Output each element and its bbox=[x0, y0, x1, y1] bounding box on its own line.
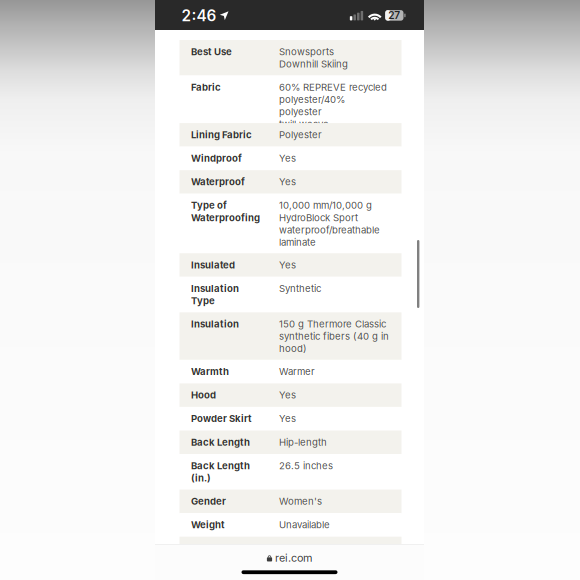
staticText: Insulation Type bbox=[191, 283, 239, 306]
staticText: Warmth bbox=[191, 366, 229, 377]
staticText: Back Length bbox=[191, 436, 250, 448]
button[interactable]: rei.com bbox=[257, 546, 322, 569]
staticText: Waterproof bbox=[191, 176, 245, 188]
staticText: Fabric bbox=[191, 81, 221, 93]
staticText: 2:46 bbox=[181, 6, 216, 25]
staticText: Synthetic bbox=[279, 283, 321, 294]
staticText: Yes bbox=[279, 413, 296, 424]
staticText: 27 bbox=[388, 9, 400, 22]
staticText: Powder Skirt bbox=[191, 413, 252, 424]
staticText: 10,000 mm/10,000 g HydroBlock Sport wate… bbox=[279, 199, 380, 248]
staticText: 26.5 inches bbox=[279, 460, 333, 471]
staticText: Yes bbox=[279, 176, 296, 188]
staticText: Yes bbox=[279, 259, 296, 271]
staticText: Snowsports Downhill Skiing bbox=[279, 46, 348, 70]
staticText: Type of Waterproofing bbox=[191, 199, 260, 223]
staticText: 60% REPREVE recycled polyester/40% polye… bbox=[279, 81, 387, 130]
staticText: Windproof bbox=[191, 152, 242, 164]
staticText: Weight bbox=[191, 519, 225, 531]
staticText: Yes bbox=[279, 152, 296, 164]
staticText: Lining Fabric bbox=[191, 129, 252, 140]
staticText: Back Length (in.) bbox=[191, 460, 250, 484]
staticText: Women's bbox=[279, 495, 322, 507]
staticText: Hip-length bbox=[279, 436, 327, 448]
staticText: Warmer bbox=[279, 366, 315, 377]
staticText: Unavailable bbox=[279, 519, 330, 531]
staticText: rei.com bbox=[275, 551, 312, 564]
staticText: Insulated bbox=[191, 259, 235, 271]
staticText: 150 g Thermore Classic synthetic fibers … bbox=[279, 318, 389, 354]
staticText: Gender bbox=[191, 495, 226, 507]
staticText: Best Use bbox=[191, 46, 232, 57]
staticText: Hood bbox=[191, 389, 216, 401]
staticText: Insulation bbox=[191, 318, 239, 330]
staticText: Yes bbox=[279, 389, 296, 401]
staticText: Polyester bbox=[279, 129, 322, 140]
